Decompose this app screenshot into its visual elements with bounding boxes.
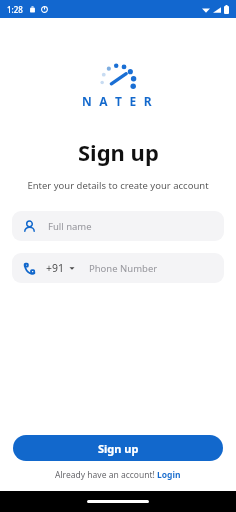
- staticText: Full name: [48, 220, 92, 233]
- staticText: 1:28: [7, 4, 23, 15]
- staticText: +91: [46, 261, 65, 275]
- button[interactable]: Sign up: [13, 435, 223, 461]
- button[interactable]: +91: [12, 253, 224, 283]
- button[interactable]: Already have an account! Login: [55, 469, 181, 481]
- button[interactable]: Full name: [12, 211, 224, 241]
- staticText: Phone Number: [89, 262, 158, 275]
- staticText: Already have an account! Login: [55, 469, 181, 481]
- staticText: Sign up: [98, 441, 139, 456]
- staticText: Enter your details to create your accoun…: [27, 179, 209, 192]
- staticText: Sign up: [78, 137, 159, 167]
- staticText: N A T E R: [82, 93, 154, 109]
